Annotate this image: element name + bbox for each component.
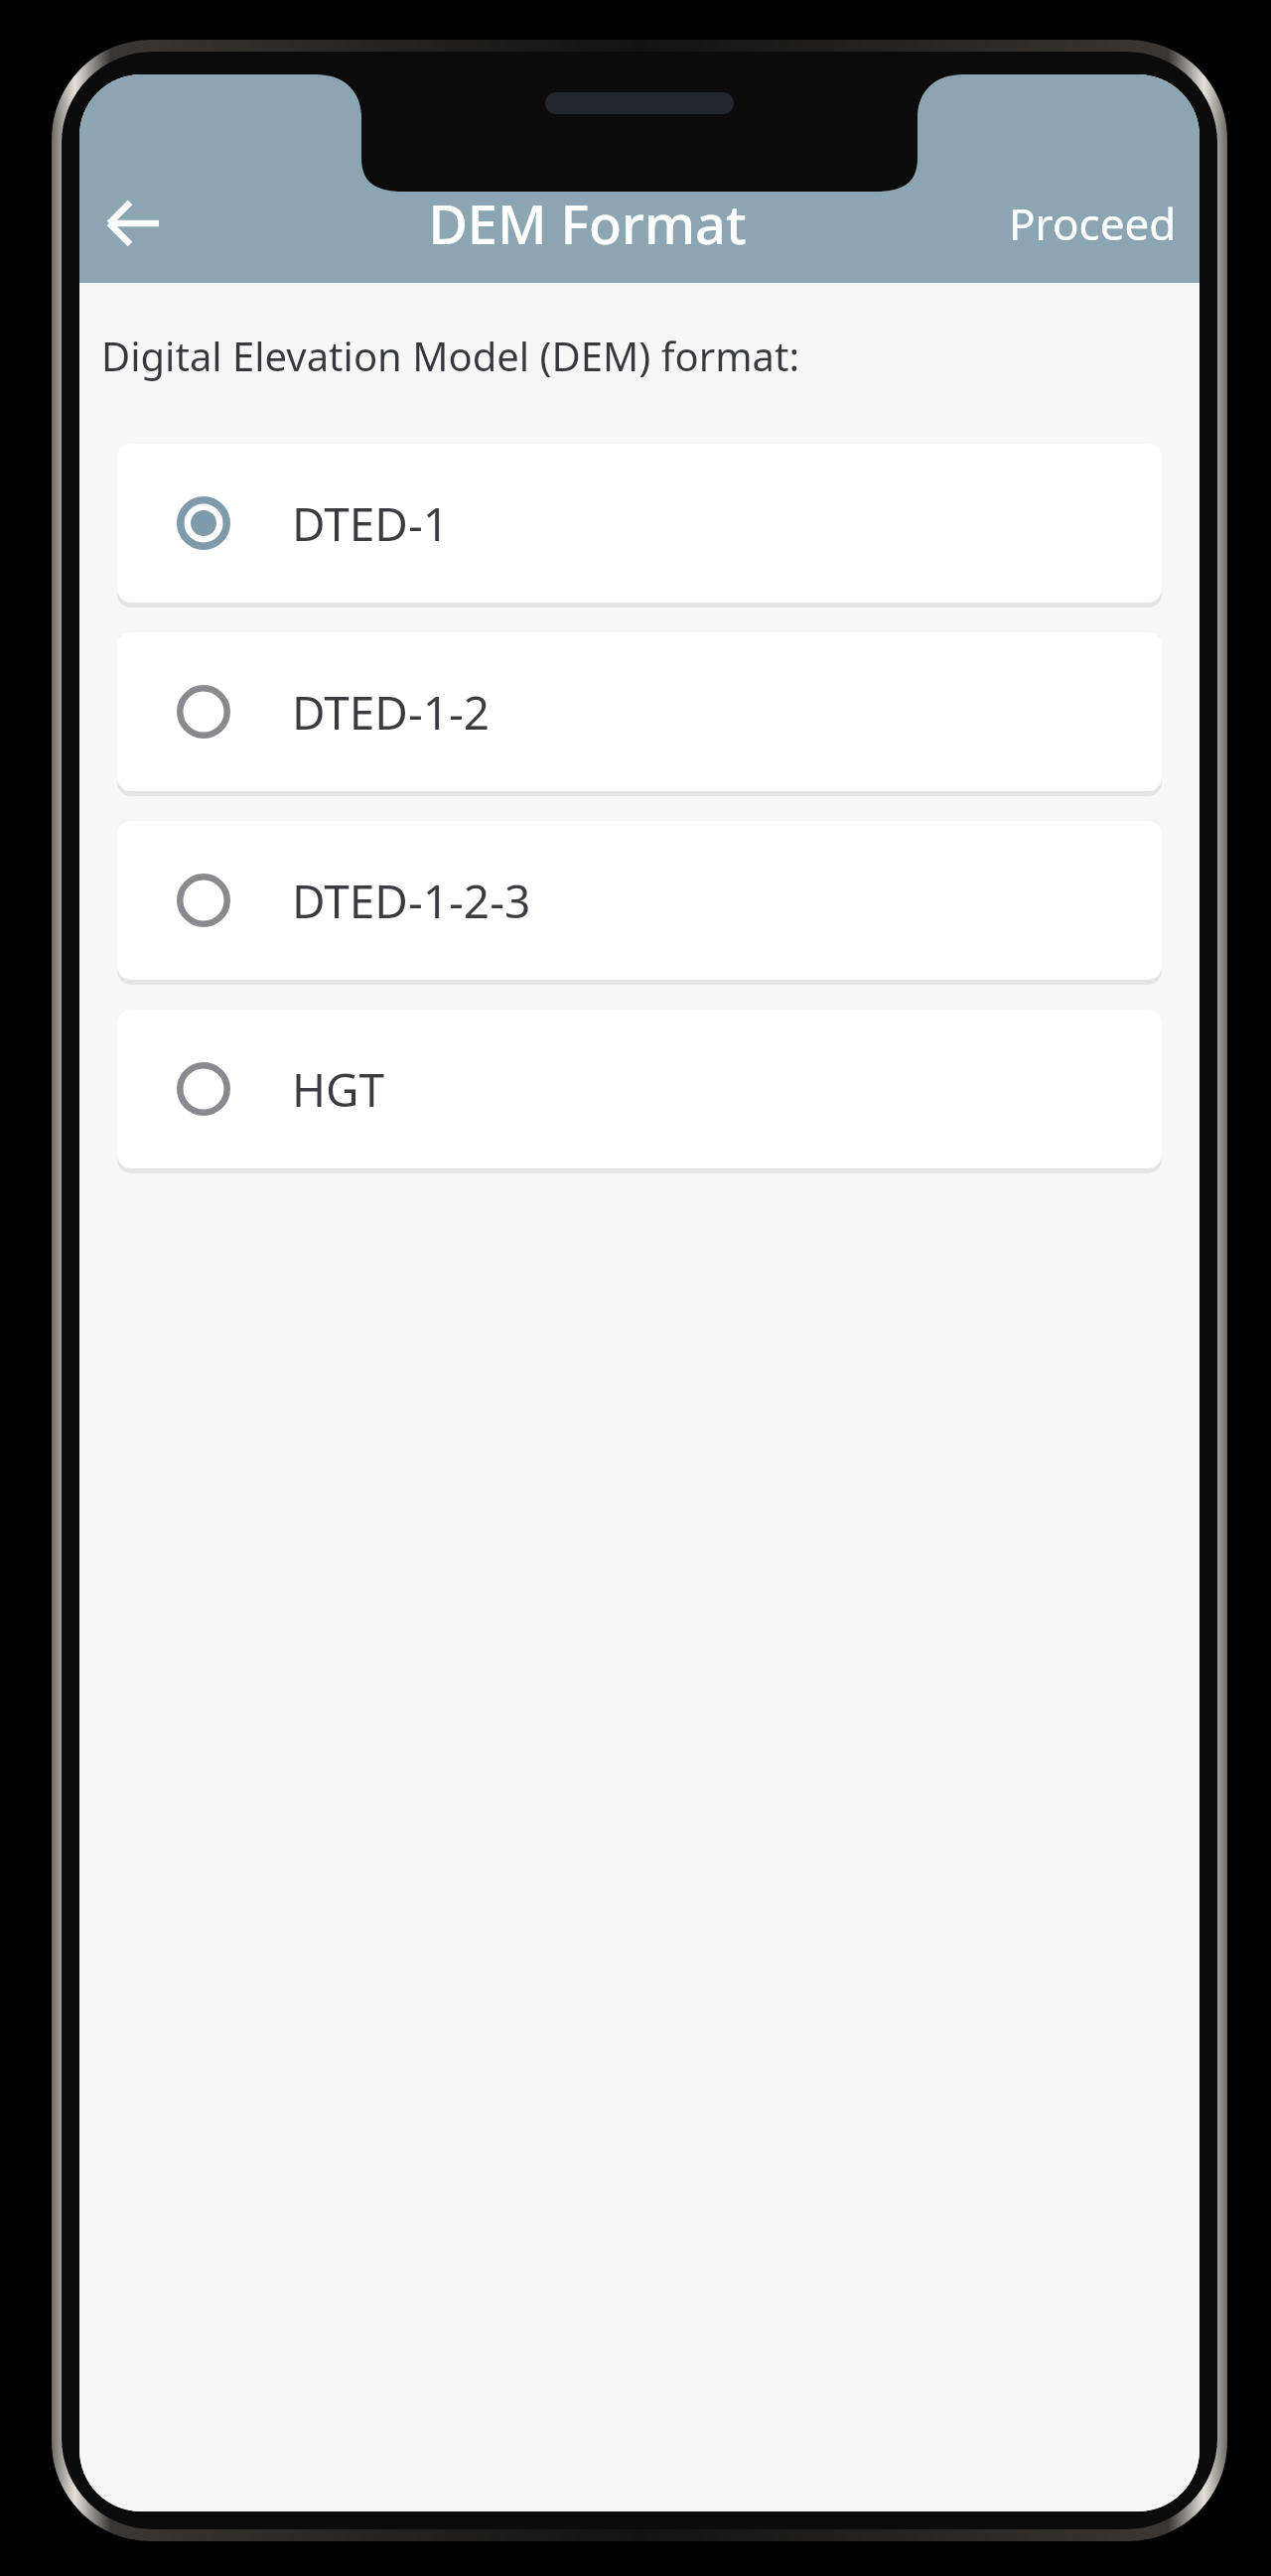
staticText: DTED-1-2 bbox=[292, 681, 491, 744]
staticText: Digital Elevation Model (DEM) format: bbox=[101, 329, 800, 382]
button[interactable]: DTED-1-2-3 bbox=[117, 821, 1162, 980]
button[interactable]: Back bbox=[79, 169, 189, 278]
button[interactable]: HGT bbox=[117, 1010, 1162, 1168]
staticText: DTED-1-2-3 bbox=[292, 870, 531, 932]
staticText: Proceed bbox=[1009, 194, 1177, 253]
button[interactable]: Proceed bbox=[986, 164, 1200, 283]
staticText: DTED-1 bbox=[292, 492, 450, 555]
button[interactable]: DTED-1-2 bbox=[117, 632, 1162, 791]
staticText: DEM Format bbox=[428, 187, 747, 260]
button[interactable]: DTED-1 bbox=[117, 444, 1162, 603]
staticText: HGT bbox=[292, 1058, 385, 1121]
